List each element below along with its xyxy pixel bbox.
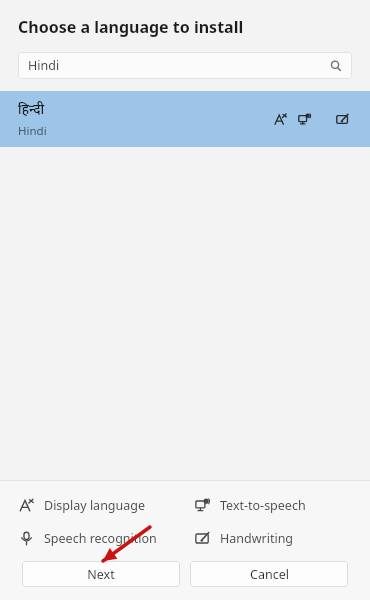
- other: Text-to-speech: [296, 111, 312, 127]
- button[interactable]: Speech recognition: [18, 530, 194, 547]
- other: Display language: [272, 111, 288, 127]
- staticText: Speech recognition: [44, 530, 157, 547]
- other: Search: [328, 58, 344, 74]
- button[interactable]: Display language: [18, 497, 194, 514]
- button[interactable]: Next: [22, 561, 180, 587]
- staticText: Hindi: [18, 123, 47, 139]
- button[interactable]: Hindi: [18, 52, 352, 79]
- button[interactable]: Text-to-speech: [194, 497, 306, 514]
- button[interactable]: Cancel: [190, 561, 348, 587]
- other: Handwriting: [334, 111, 350, 127]
- staticText: Cancel: [250, 566, 289, 583]
- button[interactable]: हिन्दी: [0, 91, 370, 147]
- staticText: Choose a language to install: [18, 16, 244, 38]
- staticText: Next: [87, 566, 115, 583]
- staticText: Hindi: [28, 57, 60, 74]
- staticText: हिन्दी: [18, 100, 45, 118]
- staticText: Handwriting: [220, 530, 294, 547]
- staticText: Display language: [44, 497, 146, 514]
- button[interactable]: Handwriting: [194, 530, 294, 547]
- staticText: Text-to-speech: [220, 497, 306, 514]
